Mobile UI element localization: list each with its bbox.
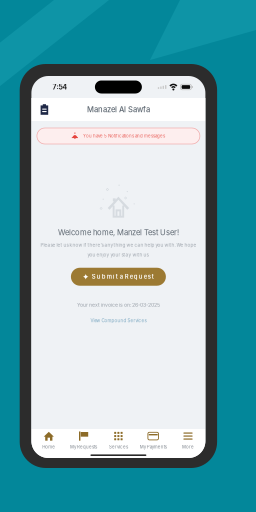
staticText: Welcome home, Manzel Test User!	[58, 228, 179, 237]
staticText: View Compound Services	[90, 318, 146, 323]
button[interactable]: Documents	[34, 99, 54, 119]
button[interactable]: Services	[101, 428, 136, 452]
staticText: S u b m i t a R e q u e s t	[92, 273, 154, 280]
staticText: Please let us know if there's anything w…	[40, 242, 196, 248]
staticText: 7:54	[52, 83, 67, 91]
button[interactable]: My Payments	[136, 428, 171, 452]
staticText: you enjoy your stay with us.	[87, 252, 149, 258]
staticText: You have 5 Notifications and messages	[83, 133, 165, 139]
button[interactable]: S u b m i t a R e q u e s t	[71, 268, 166, 286]
button[interactable]: You have 5 Notifications and messages	[37, 128, 200, 144]
button[interactable]: My Requests	[66, 428, 101, 452]
button[interactable]: View Compound Services	[90, 315, 146, 326]
staticText: Home	[42, 444, 55, 450]
button[interactable]: More	[171, 428, 205, 452]
staticText: Manazel Al Sawfa	[87, 105, 150, 114]
staticText: More	[182, 444, 194, 450]
staticText: My Payments	[140, 444, 167, 450]
staticText: Your next invoice is on: 26-03-2025	[77, 302, 160, 308]
staticText: My Requests	[70, 444, 97, 450]
staticText: Services	[109, 444, 128, 450]
button[interactable]: Home	[31, 428, 66, 452]
